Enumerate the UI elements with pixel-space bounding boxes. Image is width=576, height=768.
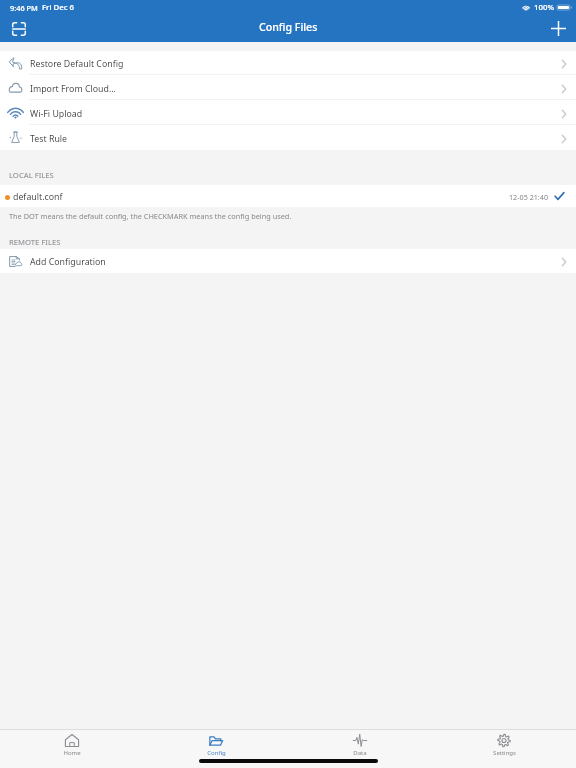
- button[interactable]: Import From Cloud...: [0, 75, 576, 100]
- staticText: 12-05 21:40: [509, 192, 548, 202]
- staticText: 9:46 PM: [10, 3, 38, 13]
- staticText: Settings: [493, 749, 516, 757]
- staticText: default.conf: [13, 191, 63, 203]
- button[interactable]: Test Rule: [0, 125, 576, 150]
- staticText: LOCAL FILES: [9, 170, 54, 180]
- button[interactable]: Settings: [432, 730, 576, 757]
- button[interactable]: Add Configuration: [0, 249, 576, 273]
- staticText: The DOT means the default config, the CH…: [9, 211, 292, 221]
- staticText: Home: [63, 749, 81, 757]
- staticText: REMOTE FILES: [9, 237, 61, 247]
- staticText: Wi-Fi Upload: [30, 108, 83, 120]
- staticText: Config: [207, 749, 226, 757]
- staticText: Import From Cloud...: [30, 83, 116, 95]
- button[interactable]: default.conf: [0, 185, 576, 207]
- staticText: Add Configuration: [30, 256, 106, 268]
- staticText: Config Files: [259, 20, 318, 34]
- staticText: Test Rule: [30, 133, 68, 145]
- button[interactable]: Home: [0, 730, 144, 757]
- button[interactable]: Add configuration: [547, 17, 569, 39]
- staticText: 100%: [534, 2, 555, 13]
- button[interactable]: Wi-Fi Upload: [0, 100, 576, 125]
- button[interactable]: Restore Default Config: [0, 51, 576, 75]
- button[interactable]: Data: [288, 730, 432, 757]
- staticText: Data: [353, 749, 367, 757]
- staticText: Restore Default Config: [30, 58, 124, 70]
- staticText: Fri Dec 6: [42, 2, 75, 13]
- button[interactable]: Config: [144, 730, 288, 757]
- button[interactable]: Scan QR code: [8, 18, 29, 39]
